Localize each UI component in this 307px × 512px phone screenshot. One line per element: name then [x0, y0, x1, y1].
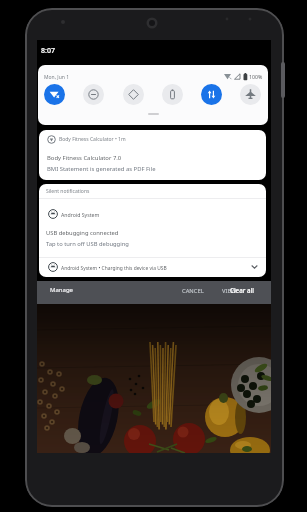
button[interactable]: CANCEL — [178, 283, 216, 301]
staticText: Manage — [50, 286, 73, 294]
staticText: USB debugging connected — [46, 229, 119, 237]
staticText: Tap to turn off USB debugging — [46, 240, 129, 248]
staticText: Silent notifications — [46, 188, 90, 195]
staticText: Android System — [61, 211, 100, 218]
staticText: Android System • Charging this device vi… — [61, 265, 167, 272]
button[interactable]: Android System • Charging this device vi… — [39, 258, 266, 277]
button[interactable] — [83, 84, 104, 105]
staticText: VIEW — [222, 287, 237, 295]
staticText: Body Fitness Calculator • 1m — [59, 136, 126, 143]
button[interactable] — [162, 84, 183, 105]
staticText: Clear all — [230, 286, 254, 294]
staticText: 8:07 — [41, 46, 55, 56]
button[interactable]: Android System — [39, 184, 266, 277]
button[interactable] — [201, 84, 222, 105]
button[interactable]: Clear all — [228, 282, 270, 302]
button[interactable] — [240, 84, 261, 105]
button[interactable]: Body Fitness Calculator • 1m — [39, 130, 266, 180]
staticText: Mon, Jun 1 — [44, 74, 69, 81]
button[interactable] — [123, 84, 144, 105]
staticText: Body Fitness Calculator 7.0 — [47, 154, 122, 162]
staticText: 100% — [249, 73, 263, 80]
staticText: BMI Statement is generated as PDF File — [47, 165, 156, 173]
button[interactable]: Manage — [46, 283, 82, 301]
button[interactable] — [44, 84, 65, 105]
staticText: CANCEL — [182, 287, 204, 295]
